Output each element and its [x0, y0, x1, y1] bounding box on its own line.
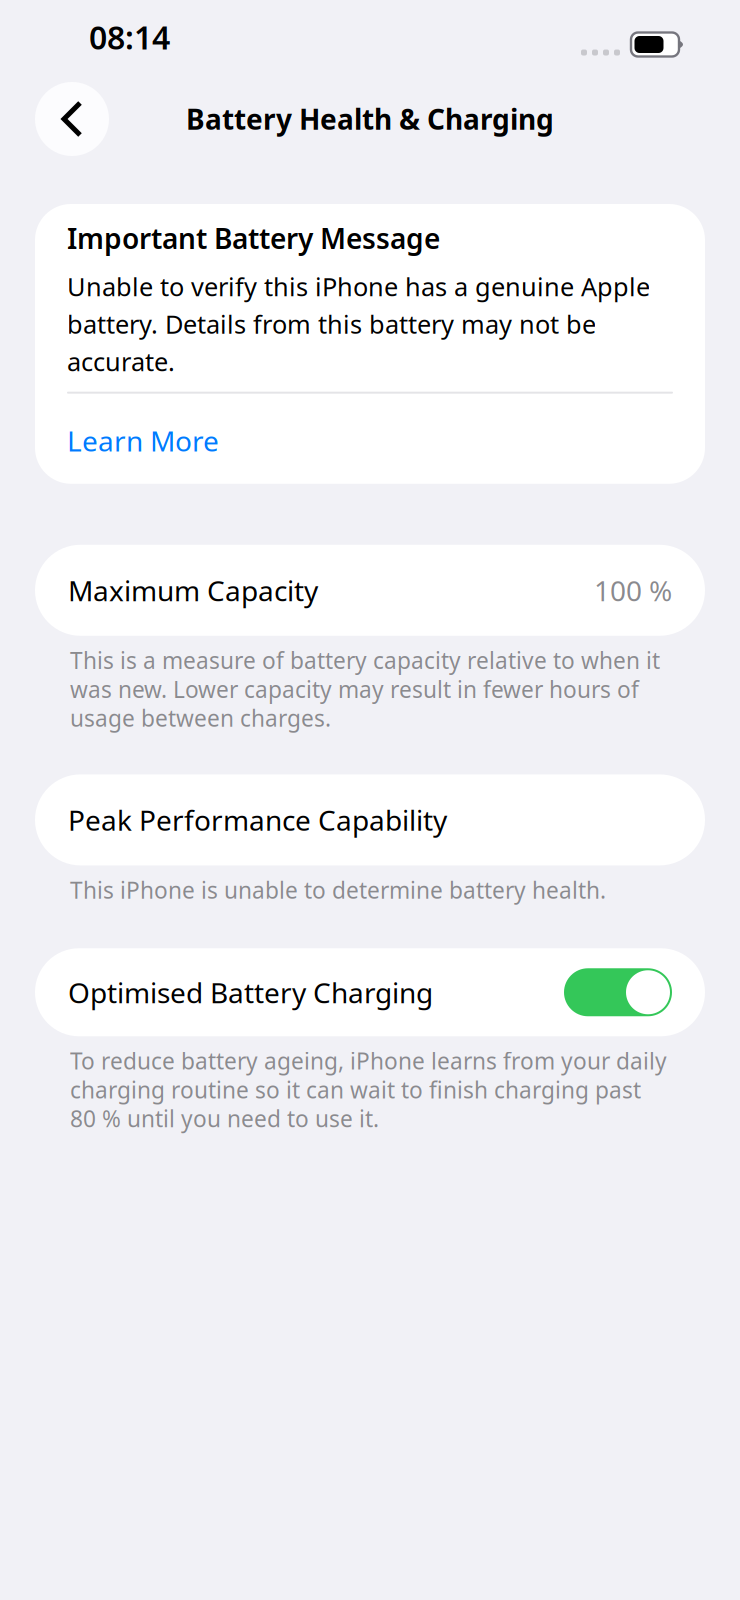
staticText: Optimised Battery Charging — [68, 973, 433, 1011]
staticText: Peak Performance Capability — [68, 801, 447, 839]
staticText: Unable to verify this iPhone has a genui… — [67, 269, 650, 379]
button[interactable]: Peak Performance Capability — [0, 774, 740, 865]
staticText: Maximum Capacity — [68, 571, 318, 609]
staticText: Battery Health & Charging — [186, 100, 554, 138]
button[interactable]: Back — [35, 82, 109, 156]
button[interactable]: Learn More — [67, 394, 673, 460]
staticText: 08:14 — [89, 15, 170, 59]
staticText: 100 % — [594, 571, 672, 609]
staticText: This is a measure of battery capacity re… — [70, 645, 660, 733]
button[interactable]: Optimised Battery Charging — [564, 968, 672, 1016]
staticText: To reduce battery ageing, iPhone learns … — [70, 1045, 667, 1134]
staticText: Learn More — [67, 422, 219, 460]
staticText: Important Battery Message — [67, 219, 440, 257]
staticText: This iPhone is unable to determine batte… — [70, 874, 606, 905]
